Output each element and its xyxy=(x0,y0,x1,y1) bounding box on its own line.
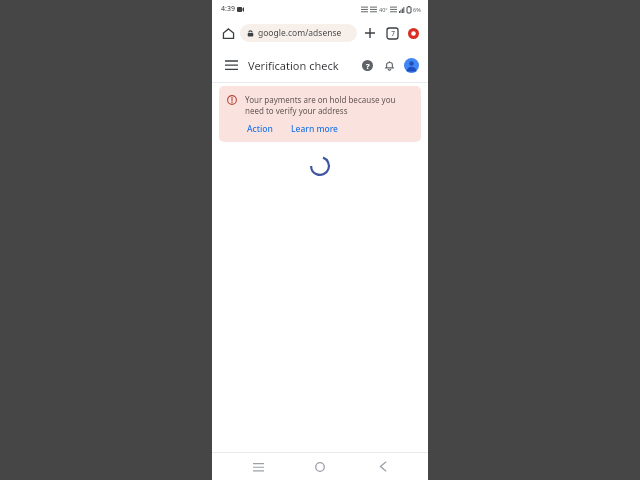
staticText: google.com/adsense xyxy=(258,27,342,39)
staticText: Verification check xyxy=(248,58,356,73)
button[interactable]: Notifications xyxy=(378,54,400,76)
button[interactable]: Tabs, 7 open xyxy=(382,23,402,43)
button[interactable]: Recent apps xyxy=(241,453,275,480)
button[interactable]: New tab xyxy=(360,23,380,43)
staticText: Action xyxy=(247,123,273,135)
button[interactable]: Open navigation menu xyxy=(220,54,242,76)
staticText: 7 xyxy=(391,29,395,38)
staticText: 6% xyxy=(413,6,421,13)
staticText: ? xyxy=(366,61,370,71)
button[interactable]: Back xyxy=(366,453,400,480)
button[interactable]: Your payments are on hold because you ne… xyxy=(219,86,421,142)
staticText: 4:39 xyxy=(221,4,235,14)
staticText: Learn more xyxy=(291,123,338,135)
button[interactable]: Help xyxy=(356,54,378,76)
button[interactable]: google.com/adsense xyxy=(240,24,357,42)
button[interactable]: Recording xyxy=(403,23,423,43)
staticText: 40° xyxy=(379,6,388,13)
button[interactable]: Account xyxy=(400,54,422,76)
button[interactable]: Home xyxy=(303,453,337,480)
button[interactable]: Learn more xyxy=(289,122,340,136)
button[interactable]: Action xyxy=(245,122,275,136)
button[interactable]: Home xyxy=(218,23,238,43)
staticText: Your payments are on hold because you ne… xyxy=(245,94,413,116)
